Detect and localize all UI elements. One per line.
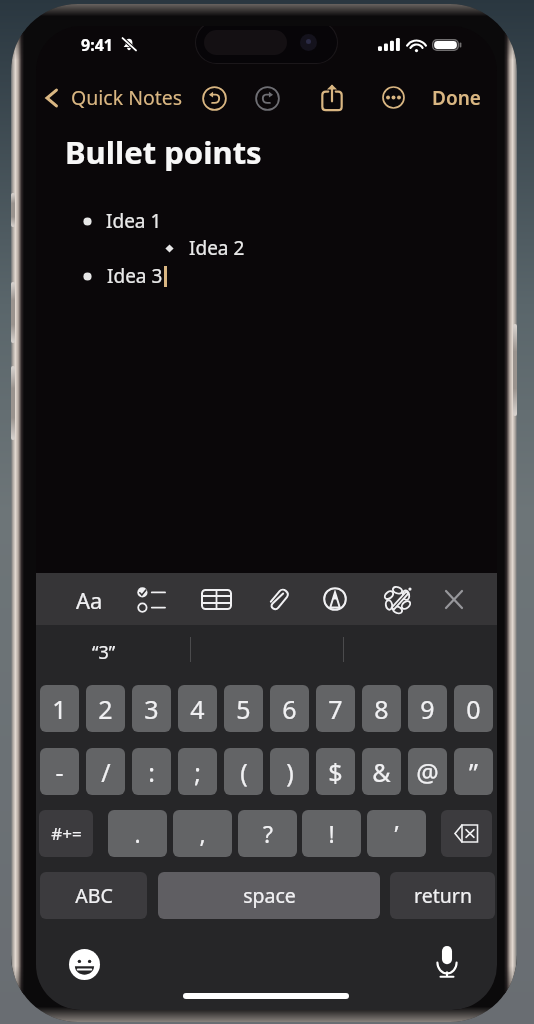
button[interactable]: Share (321, 84, 343, 111)
button[interactable]: Dictate (435, 945, 459, 978)
button[interactable]: Attach file (266, 587, 288, 610)
staticText: , (199, 818, 206, 849)
staticText: ! (328, 818, 335, 849)
button[interactable]: 2 (86, 685, 125, 732)
staticText: / (101, 755, 111, 789)
staticText: ; (194, 755, 201, 789)
button[interactable]: ( (224, 748, 263, 795)
staticText: Done (432, 85, 481, 111)
button[interactable]: $ (316, 748, 355, 795)
button[interactable]: ? (238, 810, 297, 857)
button[interactable]: 7 (316, 685, 355, 732)
staticText: ABC (75, 882, 113, 909)
button[interactable]: Undo (202, 86, 227, 111)
staticText: Aa (76, 585, 103, 613)
staticText: $ (328, 755, 343, 789)
button[interactable]: , (173, 810, 232, 857)
button[interactable]: Redo (255, 86, 280, 111)
staticText: : (148, 755, 155, 789)
staticText: Idea 1 (106, 208, 162, 234)
staticText: 9:41 (81, 34, 113, 56)
button[interactable]: 1 (40, 685, 79, 732)
button[interactable]: ; (178, 748, 217, 795)
staticText: 1 (52, 692, 67, 726)
button[interactable]: return (390, 872, 495, 919)
button[interactable]: Emoji keyboard (69, 949, 100, 980)
staticText: 3 (144, 692, 159, 726)
staticText: Idea 2 (189, 235, 245, 261)
staticText: 6 (282, 692, 297, 726)
button[interactable]: Checklist (137, 587, 165, 613)
staticText: 0 (466, 692, 481, 726)
staticText: Idea 3 (107, 263, 163, 289)
button[interactable]: ) (270, 748, 309, 795)
button[interactable]: & (362, 748, 401, 795)
staticText: 2 (98, 692, 113, 726)
staticText: - (55, 755, 64, 789)
button[interactable]: 9 (408, 685, 447, 732)
button[interactable]: #+= (39, 810, 93, 857)
staticText: ? (263, 818, 273, 849)
staticText: return (414, 882, 472, 909)
button[interactable]: 5 (224, 685, 263, 732)
staticText: 9 (420, 692, 435, 726)
staticText: @ (416, 755, 439, 789)
button[interactable]: Draw (383, 585, 412, 614)
button[interactable]: Text format (76, 585, 107, 613)
staticText: ( (240, 755, 248, 789)
button[interactable]: Table (201, 589, 232, 610)
staticText: . (134, 818, 141, 849)
button[interactable]: / (86, 748, 125, 795)
button[interactable]: 3 (132, 685, 171, 732)
staticText: “3” (92, 640, 116, 665)
button[interactable]: space (158, 872, 380, 919)
staticText: Quick Notes (71, 84, 183, 111)
button[interactable]: - (40, 748, 79, 795)
button[interactable]: Quick Notes (45, 84, 183, 111)
button[interactable]: ABC (40, 872, 147, 919)
button[interactable]: “3” (92, 640, 116, 665)
button[interactable]: ! (302, 810, 361, 857)
button[interactable]: Markup (323, 587, 347, 611)
button[interactable]: @ (408, 748, 447, 795)
staticText: ’ (394, 818, 399, 849)
button[interactable]: ’ (367, 810, 426, 857)
staticText: space (243, 882, 296, 909)
button[interactable]: ” (454, 748, 493, 795)
staticText: ) (286, 755, 294, 789)
staticText: 4 (190, 692, 205, 726)
button[interactable]: 0 (454, 685, 493, 732)
staticText: 7 (328, 692, 343, 726)
button[interactable]: Done (432, 85, 481, 111)
button[interactable]: Backspace (441, 810, 492, 857)
staticText: 5 (236, 692, 251, 726)
staticText: & (372, 755, 391, 789)
staticText: Bullet points (65, 131, 262, 173)
staticText: #+= (51, 822, 82, 845)
button[interactable]: . (108, 810, 167, 857)
button[interactable]: More options (382, 86, 405, 109)
button[interactable]: 6 (270, 685, 309, 732)
button[interactable]: : (132, 748, 171, 795)
button[interactable]: Close keyboard (444, 589, 464, 610)
staticText: 8 (374, 692, 389, 726)
button[interactable]: 4 (178, 685, 217, 732)
staticText: ” (469, 755, 478, 789)
button[interactable]: 8 (362, 685, 401, 732)
